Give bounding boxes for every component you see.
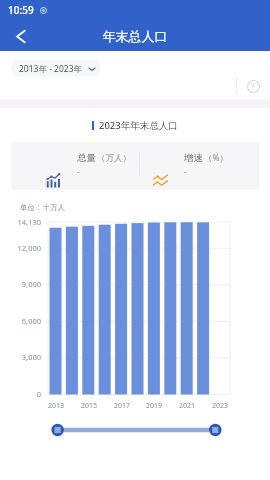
staticText: 6,000 — [0, 316, 41, 326]
staticText: - — [184, 166, 187, 177]
staticText: 2013 — [44, 401, 68, 411]
staticText: 单位：十万人 — [20, 203, 65, 212]
staticText: - — [77, 166, 80, 177]
staticText: （%） — [204, 152, 229, 164]
staticText: 年末总人口 — [0, 28, 270, 44]
staticText: 2023 — [208, 401, 232, 411]
staticText: 9,000 — [0, 279, 41, 289]
button[interactable]: Help — [240, 73, 266, 99]
staticText: 2019 — [142, 401, 166, 411]
staticText: 12,000 — [0, 243, 41, 253]
button[interactable]: 2013年 - 2023年 — [11, 60, 101, 77]
staticText: 14,130 — [0, 217, 41, 227]
staticText: 0 — [0, 389, 41, 399]
staticText: 3,000 — [0, 352, 41, 362]
staticText: 2021 — [175, 401, 199, 411]
staticText: 2023年年末总人口 — [99, 119, 178, 132]
staticText: 2013年 - 2023年 — [19, 63, 83, 75]
staticText: 2015 — [77, 401, 101, 411]
staticText: 增速 — [184, 152, 203, 164]
staticText: （万人） — [97, 153, 131, 164]
button[interactable]: Back — [6, 22, 34, 50]
staticText: 10:59 — [8, 3, 34, 17]
staticText: 2017 — [110, 401, 134, 411]
staticText: 总量 — [77, 152, 96, 164]
staticText: ? — [251, 81, 255, 92]
